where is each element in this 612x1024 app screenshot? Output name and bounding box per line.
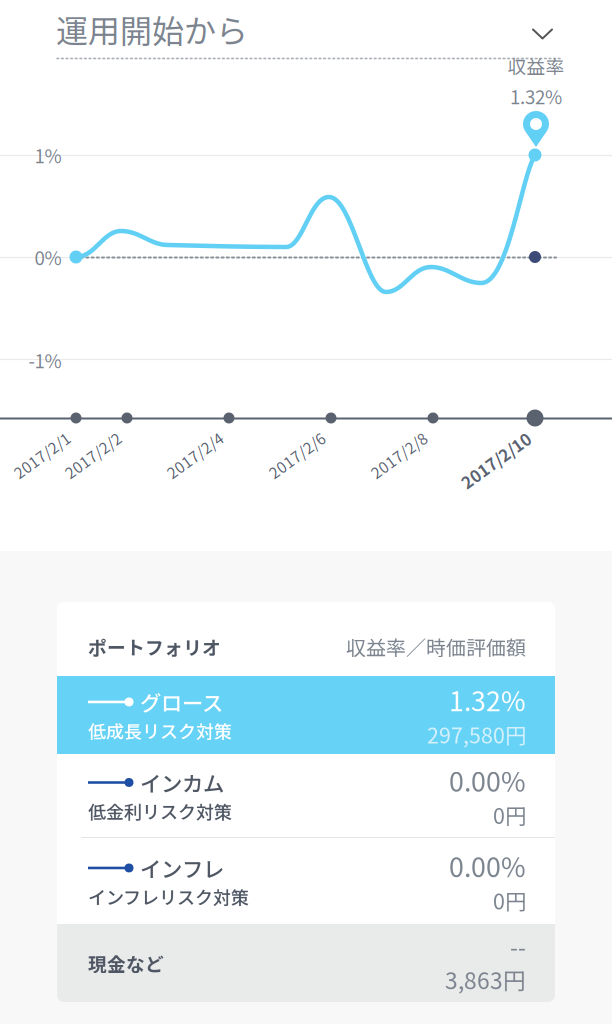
staticText: 0.00%	[449, 846, 526, 885]
staticText: 2017/2/1	[9, 444, 75, 466]
staticText: インフレ	[140, 852, 224, 883]
button[interactable]: インカム	[57, 754, 555, 838]
button[interactable]: 運用開始から	[0, 0, 612, 58]
staticText: 1.32%	[449, 680, 526, 719]
staticText: 0円	[493, 799, 526, 830]
staticText: 2017/2/2	[60, 444, 126, 466]
button[interactable]: インフレ	[57, 838, 555, 924]
staticText: ポートフォリオ	[88, 633, 221, 660]
staticText: 2017/2/10	[455, 448, 537, 472]
staticText: 0%	[34, 243, 61, 270]
staticText: 0.00%	[449, 761, 526, 799]
staticText: 2017/2/4	[162, 444, 228, 466]
staticText: 現金など	[88, 949, 164, 976]
staticText: 低成長リスク対策	[88, 717, 232, 743]
staticText: インカム	[140, 767, 224, 798]
staticText: 3,863円	[445, 963, 526, 996]
staticText: 収益率／時価評価額	[346, 632, 526, 661]
staticText: 297,580円	[427, 719, 526, 750]
staticText: 1%	[34, 141, 61, 168]
staticText: --	[510, 930, 526, 963]
staticText: -1%	[28, 346, 61, 373]
staticText: 運用開始から	[56, 6, 248, 52]
staticText: 低金利リスク対策	[88, 798, 232, 824]
staticText: 2017/2/6	[264, 444, 330, 466]
staticText: 収益率	[507, 52, 564, 79]
staticText: 0円	[493, 885, 526, 916]
staticText: グロース	[140, 686, 223, 717]
staticText: インフレリスク対策	[88, 883, 249, 909]
staticText: 1.32%	[510, 82, 562, 109]
button[interactable]: グロース	[57, 676, 555, 754]
staticText: 2017/2/8	[366, 444, 432, 466]
